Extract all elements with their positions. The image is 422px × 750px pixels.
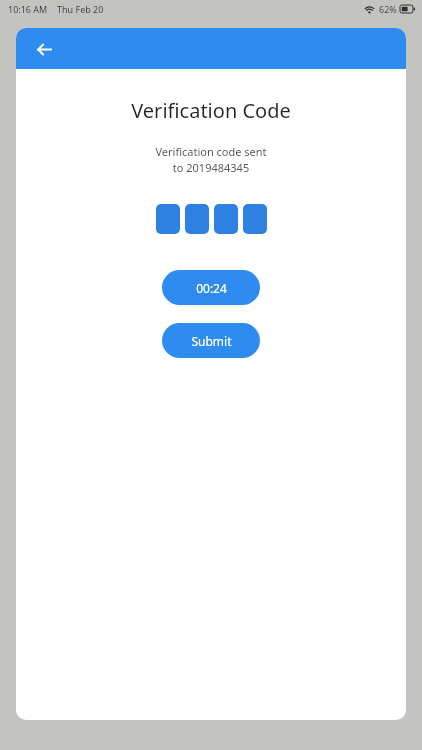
- staticText: Submit: [191, 333, 232, 349]
- button[interactable]: Code digit: [156, 204, 180, 234]
- staticText: 00:24: [196, 280, 227, 296]
- staticText: 10:16 AM: [8, 3, 48, 15]
- button[interactable]: Code digit: [185, 204, 209, 234]
- button[interactable]: Back: [26, 31, 62, 67]
- staticText: 62%: [379, 3, 397, 15]
- button[interactable]: Code digit: [214, 204, 238, 234]
- button[interactable]: Submit: [162, 323, 260, 358]
- button[interactable]: Code digit: [243, 204, 267, 234]
- staticText: Verification code sent to 2019484345: [155, 144, 267, 175]
- staticText: Verification Code: [131, 97, 291, 124]
- button[interactable]: 00:24: [162, 270, 260, 305]
- staticText: Thu Feb 20: [57, 3, 104, 15]
